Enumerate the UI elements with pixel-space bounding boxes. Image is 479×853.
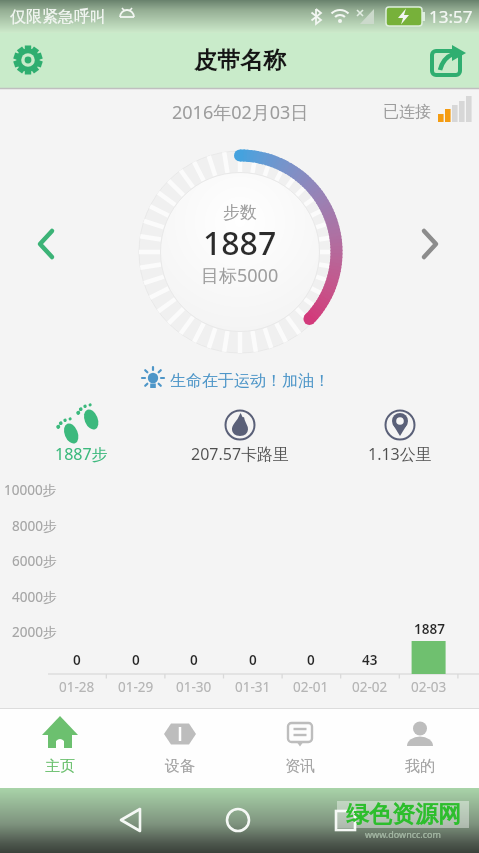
staticText: 目标5000 [201,263,279,288]
staticText: 已连接 [383,102,431,122]
staticText: 43 [362,651,378,669]
button[interactable] [0,708,120,788]
staticText: 皮带名称 [194,46,286,75]
button[interactable] [4,36,52,84]
button[interactable] [240,708,360,788]
button[interactable] [22,220,70,268]
staticText: 01-28 [59,678,95,696]
staticText: 0 [190,651,198,669]
staticText: 设备 [165,757,195,776]
button[interactable] [423,36,471,84]
staticText: 主页 [45,757,75,776]
staticText: 02-01 [293,678,329,696]
staticText: 仅限紧急呼叫 [10,7,106,27]
staticText: 1.13公里 [368,443,432,465]
staticText: 01-30 [176,678,212,696]
staticText: 13:57 [429,5,473,28]
staticText: 1887 [203,221,277,265]
staticText: 6000步 [12,552,57,570]
staticText: 01-31 [235,678,271,696]
staticText: 0 [73,651,81,669]
staticText: www.downcc.com [365,828,441,840]
button[interactable] [214,796,262,844]
staticText: 0 [249,651,257,669]
staticText: 2016年02月03日 [172,100,309,125]
button[interactable] [406,220,454,268]
staticText: 10000步 [4,481,57,499]
staticText: 2000步 [12,623,57,641]
staticText: 生命在于运动！加油！ [170,371,330,391]
staticText: 绿色资源网 [346,800,461,829]
staticText: 02-03 [411,678,447,696]
staticText: 1887 [414,620,445,638]
staticText: 0 [132,651,140,669]
staticText: 我的 [405,757,435,776]
staticText: 02-02 [352,678,388,696]
button[interactable] [107,796,155,844]
button[interactable] [360,708,479,788]
button[interactable] [321,796,369,844]
staticText: 1887步 [55,443,108,465]
staticText: 4000步 [12,588,57,606]
staticText: 资讯 [285,757,315,776]
button[interactable] [120,708,240,788]
staticText: 0 [307,651,315,669]
staticText: 步数 [223,202,257,223]
staticText: 8000步 [12,517,57,535]
staticText: 207.57卡路里 [191,443,290,465]
staticText: 01-29 [118,678,154,696]
